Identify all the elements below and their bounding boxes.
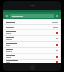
- button[interactable]: [4, 25, 60, 29]
- button[interactable]: [4, 54, 60, 59]
- button[interactable]: Search: [10, 14, 54, 18]
- button[interactable]: Add: [55, 14, 59, 18]
- button[interactable]: Home: [30, 65, 35, 70]
- button[interactable]: [4, 42, 60, 47]
- button[interactable]: [4, 30, 60, 35]
- button[interactable]: Menu: [5, 14, 9, 18]
- button[interactable]: [4, 48, 60, 53]
- button[interactable]: [4, 60, 60, 63]
- button[interactable]: [4, 36, 60, 41]
- button[interactable]: [4, 20, 60, 24]
